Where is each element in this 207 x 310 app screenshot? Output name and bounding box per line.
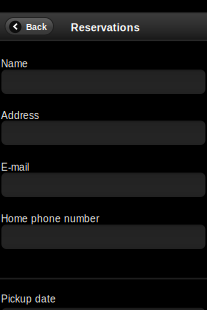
staticText: Name — [1, 58, 28, 69]
staticText: Home phone number — [1, 213, 99, 224]
button[interactable]: Back — [5, 17, 53, 35]
staticText: Reservations — [71, 22, 140, 33]
staticText: E-mail — [1, 162, 29, 173]
button[interactable]: Reservations — [71, 22, 140, 33]
staticText: Address — [1, 110, 39, 121]
staticText: Back — [26, 22, 47, 32]
staticText: Pickup date — [1, 293, 56, 305]
